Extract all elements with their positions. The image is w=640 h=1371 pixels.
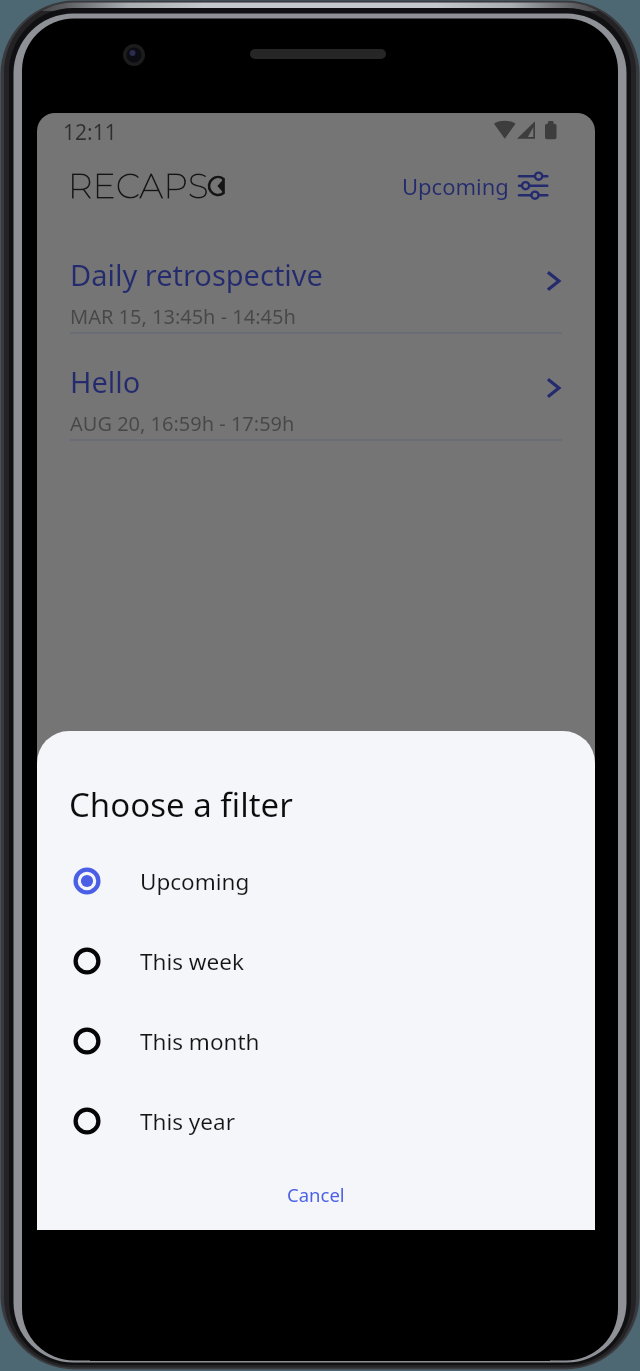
- staticText: Upcoming: [402, 171, 509, 201]
- staticText: Choose a filter: [69, 782, 293, 827]
- staticText: MAR 15, 13:45h - 14:45h: [70, 303, 296, 330]
- staticText: Hello: [70, 362, 141, 401]
- button[interactable]: Hello: [37, 337, 595, 444]
- staticText: AUG 20, 16:59h - 17:59h: [70, 410, 295, 437]
- staticText: RECAPS: [68, 165, 210, 206]
- button[interactable]: Upcoming: [402, 171, 549, 201]
- button[interactable]: This month: [37, 1001, 595, 1081]
- button[interactable]: This year: [37, 1081, 595, 1161]
- staticText: Upcoming: [140, 866, 250, 897]
- staticText: 12:11: [63, 118, 117, 147]
- button[interactable]: This week: [37, 921, 595, 1001]
- button[interactable]: Daily retrospective: [37, 230, 595, 337]
- button[interactable]: Cancel: [263, 1172, 369, 1217]
- staticText: This year: [140, 1106, 235, 1137]
- staticText: Daily retrospective: [70, 255, 323, 294]
- button[interactable]: Upcoming: [37, 841, 595, 921]
- staticText: This month: [140, 1026, 260, 1057]
- staticText: This week: [140, 946, 244, 977]
- staticText: Cancel: [287, 1182, 345, 1207]
- staticText: RECAPS: [68, 165, 210, 206]
